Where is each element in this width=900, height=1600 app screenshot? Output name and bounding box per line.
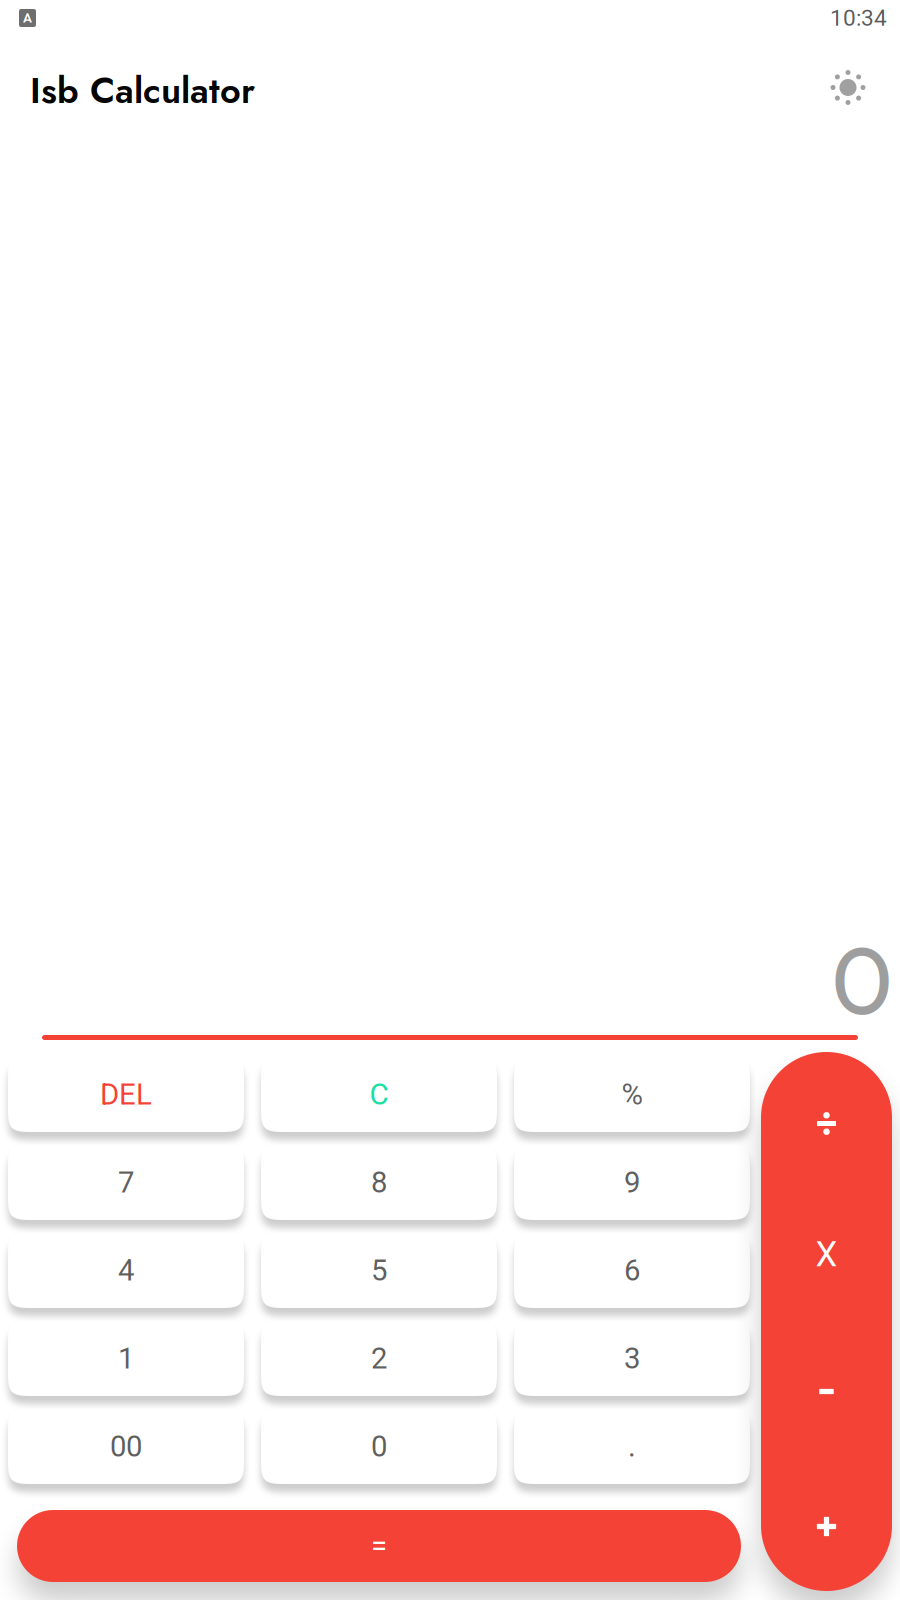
button[interactable]: =: [17, 1510, 741, 1582]
staticText: 4: [118, 1253, 134, 1288]
button[interactable]: Plus: [761, 1455, 892, 1589]
staticText: 0: [371, 1429, 387, 1464]
button[interactable]: C: [261, 1057, 497, 1132]
staticText: %: [621, 1077, 642, 1112]
staticText: 00: [110, 1429, 142, 1464]
staticText: 1: [118, 1341, 134, 1376]
staticText: 8: [371, 1165, 387, 1200]
button[interactable]: 2: [261, 1321, 497, 1396]
button[interactable]: Minus: [761, 1321, 892, 1455]
button[interactable]: 00: [8, 1409, 244, 1484]
staticText: C: [369, 1077, 388, 1112]
staticText: 2: [371, 1341, 387, 1376]
button[interactable]: Divide: [761, 1053, 892, 1187]
staticText: =: [371, 1529, 387, 1563]
staticText: 6: [624, 1253, 640, 1288]
button[interactable]: 8: [261, 1145, 497, 1220]
staticText: X: [815, 1234, 837, 1275]
staticText: 10:34: [830, 5, 887, 31]
staticText: A: [23, 10, 32, 26]
button[interactable]: 3: [514, 1321, 750, 1396]
staticText: DEL: [100, 1077, 152, 1112]
staticText: Isb Calculator: [30, 64, 255, 116]
button[interactable]: 4: [8, 1233, 244, 1308]
button[interactable]: 9: [514, 1145, 750, 1220]
staticText: 3: [624, 1341, 640, 1376]
staticText: 7: [118, 1165, 134, 1200]
staticText: 0: [831, 919, 893, 1038]
button[interactable]: DEL: [8, 1057, 244, 1132]
button[interactable]: .: [514, 1409, 750, 1484]
button[interactable]: 5: [261, 1233, 497, 1308]
button[interactable]: 6: [514, 1233, 750, 1308]
staticText: 5: [371, 1253, 387, 1288]
button[interactable]: Multiply: [761, 1187, 892, 1321]
staticText: .: [628, 1429, 636, 1464]
button[interactable]: 0: [261, 1409, 497, 1484]
button[interactable]: %: [514, 1057, 750, 1132]
button[interactable]: 7: [8, 1145, 244, 1220]
button[interactable]: Toggle theme: [822, 64, 874, 116]
button[interactable]: 1: [8, 1321, 244, 1396]
staticText: 9: [624, 1165, 640, 1200]
